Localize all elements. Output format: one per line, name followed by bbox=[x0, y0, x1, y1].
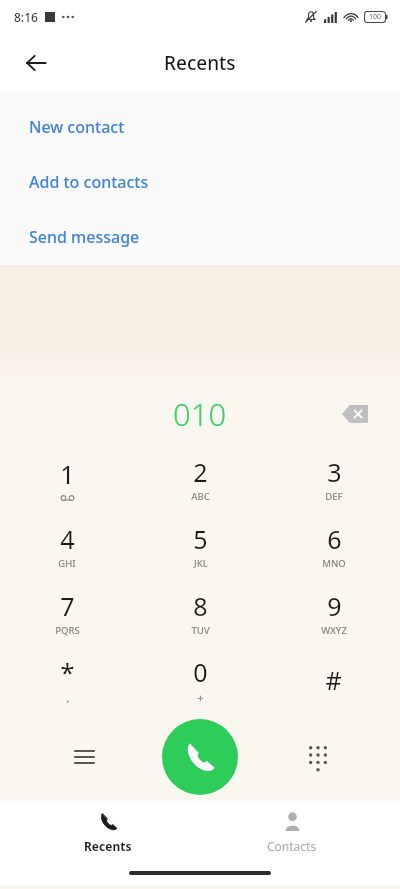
button[interactable]: 2 bbox=[134, 445, 267, 512]
staticText: DEF bbox=[325, 490, 343, 503]
staticText: 010 bbox=[173, 393, 227, 435]
button[interactable]: 3 bbox=[267, 445, 400, 512]
staticText: Recents bbox=[84, 838, 132, 854]
staticText: WXYZ bbox=[321, 624, 347, 637]
button[interactable]: # bbox=[267, 646, 400, 713]
staticText: 1 bbox=[60, 457, 75, 491]
staticText: * bbox=[60, 654, 75, 689]
staticText: + bbox=[197, 690, 204, 705]
staticText: 6 bbox=[327, 522, 342, 556]
button[interactable]: 5 bbox=[134, 512, 267, 579]
staticText: 3 bbox=[327, 455, 342, 489]
button[interactable]: Dialpad bbox=[296, 735, 340, 779]
button[interactable]: 7 bbox=[0, 579, 134, 646]
button[interactable]: Menu bbox=[62, 735, 106, 779]
button[interactable]: 0 bbox=[134, 646, 267, 713]
staticText: Recents bbox=[164, 50, 236, 76]
staticText: 7 bbox=[60, 589, 75, 623]
staticText: Contacts bbox=[267, 838, 317, 854]
button[interactable]: Recents bbox=[33, 801, 183, 863]
staticText: 100 bbox=[369, 12, 382, 22]
button[interactable]: Call bbox=[162, 719, 238, 795]
button[interactable]: New contact bbox=[0, 99, 400, 154]
staticText: 4 bbox=[60, 522, 75, 556]
button[interactable]: Back bbox=[12, 39, 60, 87]
staticText: 8:16 bbox=[14, 9, 38, 25]
staticText: 9 bbox=[327, 589, 342, 623]
staticText: TUV bbox=[191, 624, 210, 637]
button[interactable]: 9 bbox=[267, 579, 400, 646]
button[interactable]: Contacts bbox=[217, 801, 367, 863]
staticText: Send message bbox=[29, 226, 140, 248]
button[interactable]: * bbox=[0, 646, 134, 713]
staticText: MNO bbox=[322, 557, 346, 570]
staticText: 0 bbox=[193, 655, 208, 689]
staticText: PQRS bbox=[55, 624, 80, 637]
staticText: # bbox=[325, 663, 342, 697]
button[interactable]: Backspace bbox=[332, 391, 378, 437]
staticText: GHI bbox=[58, 557, 76, 570]
staticText: 5 bbox=[193, 522, 208, 556]
button[interactable]: 6 bbox=[267, 512, 400, 579]
staticText: ABC bbox=[191, 490, 210, 503]
staticText: 8 bbox=[193, 589, 208, 623]
button[interactable]: 8 bbox=[134, 579, 267, 646]
button[interactable]: 1 bbox=[0, 445, 134, 512]
button[interactable]: Send message bbox=[0, 209, 400, 264]
staticText: New contact bbox=[29, 116, 125, 138]
staticText: , bbox=[66, 690, 70, 705]
staticText: 2 bbox=[193, 455, 208, 489]
staticText: Add to contacts bbox=[29, 171, 149, 193]
button[interactable]: 4 bbox=[0, 512, 134, 579]
button[interactable]: Add to contacts bbox=[0, 154, 400, 209]
staticText: JKL bbox=[194, 557, 208, 570]
